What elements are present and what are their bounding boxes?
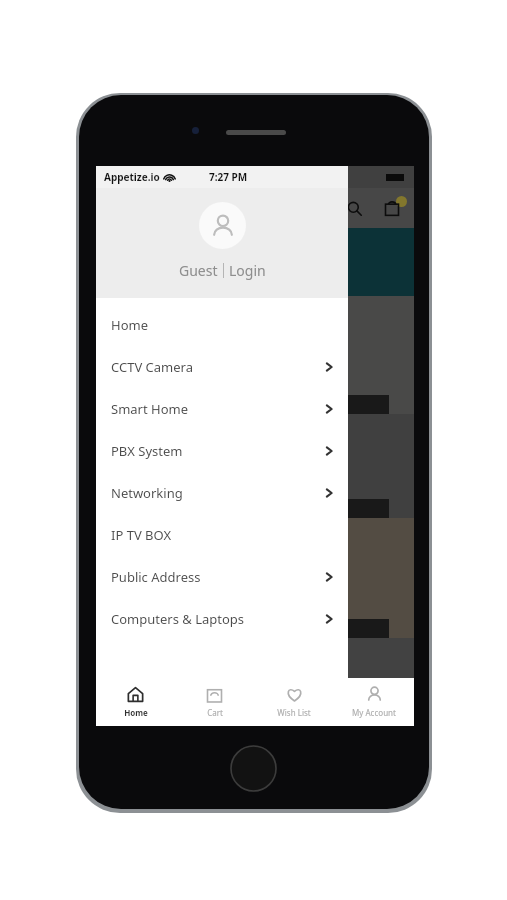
staticText: Networking [111, 484, 183, 502]
staticText: PBX System [111, 442, 183, 460]
staticText: Smart Home [111, 400, 189, 418]
button[interactable]: Home [96, 304, 348, 346]
staticText: Home [111, 316, 148, 334]
button[interactable]: Networking [96, 472, 348, 514]
staticText: Wish List [277, 707, 311, 718]
button[interactable]: Wish List [254, 678, 334, 726]
staticText: Shop now [254, 253, 317, 271]
button[interactable]: PBX System [96, 430, 348, 472]
button[interactable]: My Account [334, 678, 414, 726]
button[interactable]: Public Address [96, 556, 348, 598]
staticText: Cart [207, 707, 223, 718]
staticText: Computers & Laptops [111, 610, 245, 628]
staticText: Public Address [111, 568, 201, 586]
button[interactable]: Cart [175, 678, 254, 726]
staticText: 7:27 PM [209, 170, 248, 184]
staticText: PBX System [106, 397, 171, 412]
staticText: My Account [352, 707, 396, 718]
button[interactable]: Guest [179, 261, 218, 280]
button[interactable]: Smart Home [96, 388, 348, 430]
staticText: CCTV Camera [111, 358, 193, 376]
staticText: Home [124, 707, 148, 718]
staticText: Appetize.io [104, 170, 160, 184]
button[interactable]: Home [96, 678, 175, 726]
button[interactable]: Computers & Laptops [96, 598, 348, 640]
staticText: IP TV BOX [111, 526, 172, 544]
button[interactable]: Login [229, 261, 266, 280]
button[interactable]: CCTV Camera [96, 346, 348, 388]
button[interactable]: IP TV BOX [96, 514, 348, 556]
staticText: Smart Home [106, 621, 175, 636]
